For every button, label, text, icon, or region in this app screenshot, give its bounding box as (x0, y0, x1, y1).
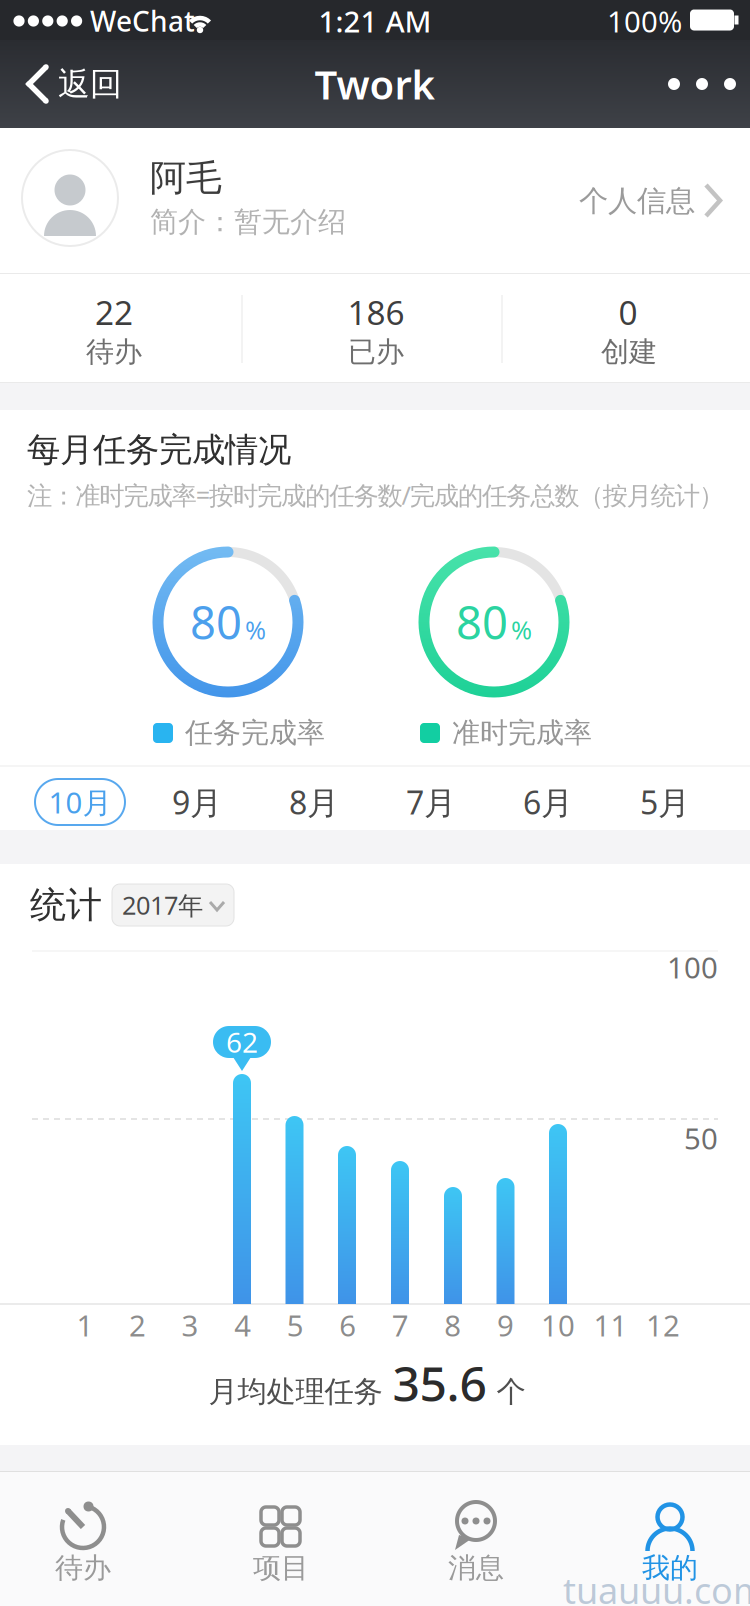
staticText: 返回 (58, 64, 122, 104)
staticText: 100% (607, 1, 682, 40)
staticText: Twork (314, 57, 435, 110)
staticText: 8 (444, 1305, 461, 1344)
staticText: 186 (347, 290, 404, 334)
staticText: 5 (287, 1305, 304, 1344)
staticText: 7月 (406, 781, 456, 823)
staticText: 已办 (348, 335, 404, 369)
staticText: 80 (456, 592, 508, 652)
staticText: 注：准时完成率=按时完成的任务数/完成的任务总数（按月统计） (27, 478, 724, 512)
staticText: 2017年 (122, 888, 203, 922)
staticText: 个 (496, 1374, 525, 1410)
staticText: 7 (392, 1305, 409, 1344)
staticText: 简介：暂无介绍 (150, 205, 346, 239)
staticText: 35.6 (392, 1351, 486, 1415)
staticText: 个人信息 (579, 183, 695, 219)
staticText: 待办 (86, 335, 142, 369)
staticText: 50 (684, 1118, 718, 1157)
staticText: 准时完成率 (452, 716, 592, 750)
staticText: 月均处理任务 (208, 1374, 382, 1410)
staticText: % (245, 613, 266, 646)
staticText: 1 (76, 1305, 93, 1344)
staticText: 5月 (640, 781, 690, 823)
staticText: WeChat (90, 2, 195, 40)
staticText: 6月 (523, 781, 573, 823)
staticText: 阿毛 (150, 156, 222, 200)
staticText: 消息 (448, 1551, 504, 1585)
staticText: 11 (593, 1305, 627, 1344)
staticText: 62 (226, 1023, 258, 1061)
staticText: 2 (129, 1305, 146, 1344)
staticText: 每月任务完成情况 (27, 429, 291, 470)
staticText: 项目 (253, 1551, 309, 1585)
staticText: 我的 (642, 1551, 698, 1585)
staticText: 0 (618, 290, 637, 334)
staticText: 6 (339, 1305, 356, 1344)
staticText: 待办 (55, 1551, 111, 1585)
staticText: 10 (541, 1305, 575, 1344)
staticText: 8月 (289, 781, 339, 823)
staticText: tuauuu.com (563, 1566, 750, 1606)
staticText: 3 (182, 1305, 199, 1344)
staticText: 12 (646, 1305, 680, 1344)
staticText: 10月 (48, 782, 111, 821)
staticText: % (511, 613, 532, 646)
staticText: 创建 (601, 335, 657, 369)
staticText: 100 (667, 947, 718, 986)
staticText: 9 (497, 1305, 514, 1344)
staticText: 80 (190, 592, 242, 652)
staticText: 任务完成率 (185, 716, 325, 750)
staticText: 统计 (30, 883, 102, 927)
staticText: 4 (234, 1305, 251, 1344)
staticText: 1:21 AM (318, 1, 431, 40)
staticText: 22 (95, 290, 133, 334)
staticText: 9月 (172, 781, 222, 823)
